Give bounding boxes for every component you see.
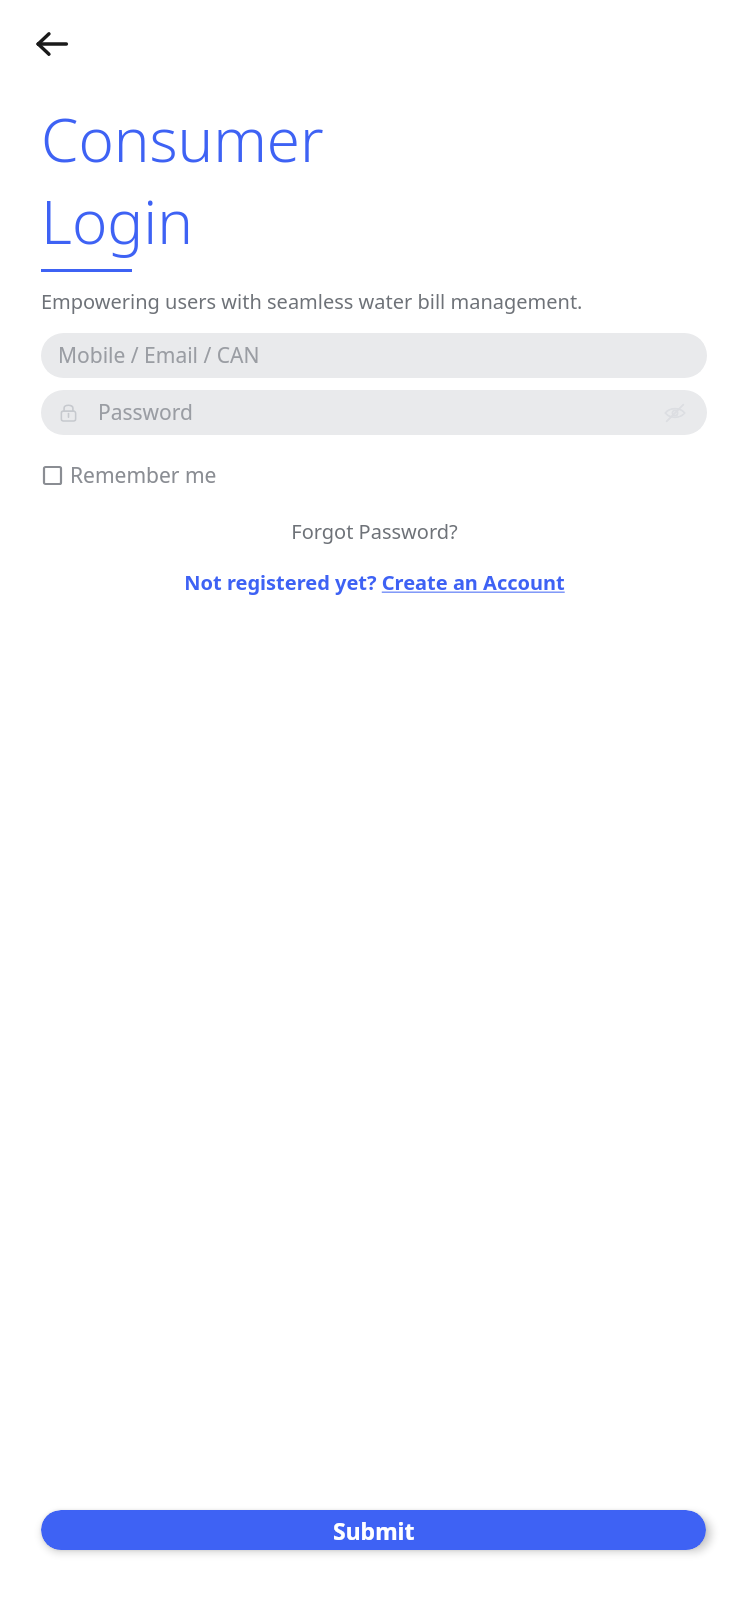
button[interactable]: Show password bbox=[662, 400, 688, 426]
staticText: Empowering users with seamless water bil… bbox=[41, 288, 583, 315]
button[interactable]: Not registered yet? Create an Account bbox=[176, 565, 573, 600]
button[interactable]: Remember me bbox=[44, 461, 217, 490]
staticText: Remember me bbox=[70, 461, 217, 490]
button[interactable]: Mobile / Email / CAN bbox=[41, 333, 707, 378]
button[interactable]: Back bbox=[26, 18, 78, 70]
staticText: Consumer bbox=[41, 98, 324, 180]
staticText: Password bbox=[98, 398, 662, 427]
button[interactable]: Forgot Password? bbox=[283, 514, 466, 549]
button[interactable]: Submit bbox=[41, 1510, 706, 1550]
staticText: Login bbox=[41, 180, 193, 262]
staticText: Forgot Password? bbox=[291, 518, 458, 545]
staticText: Submit bbox=[333, 1515, 415, 1546]
staticText: Not registered yet? Create an Account bbox=[184, 569, 565, 596]
staticText: Mobile / Email / CAN bbox=[58, 341, 260, 370]
button[interactable]: Password bbox=[41, 390, 707, 435]
